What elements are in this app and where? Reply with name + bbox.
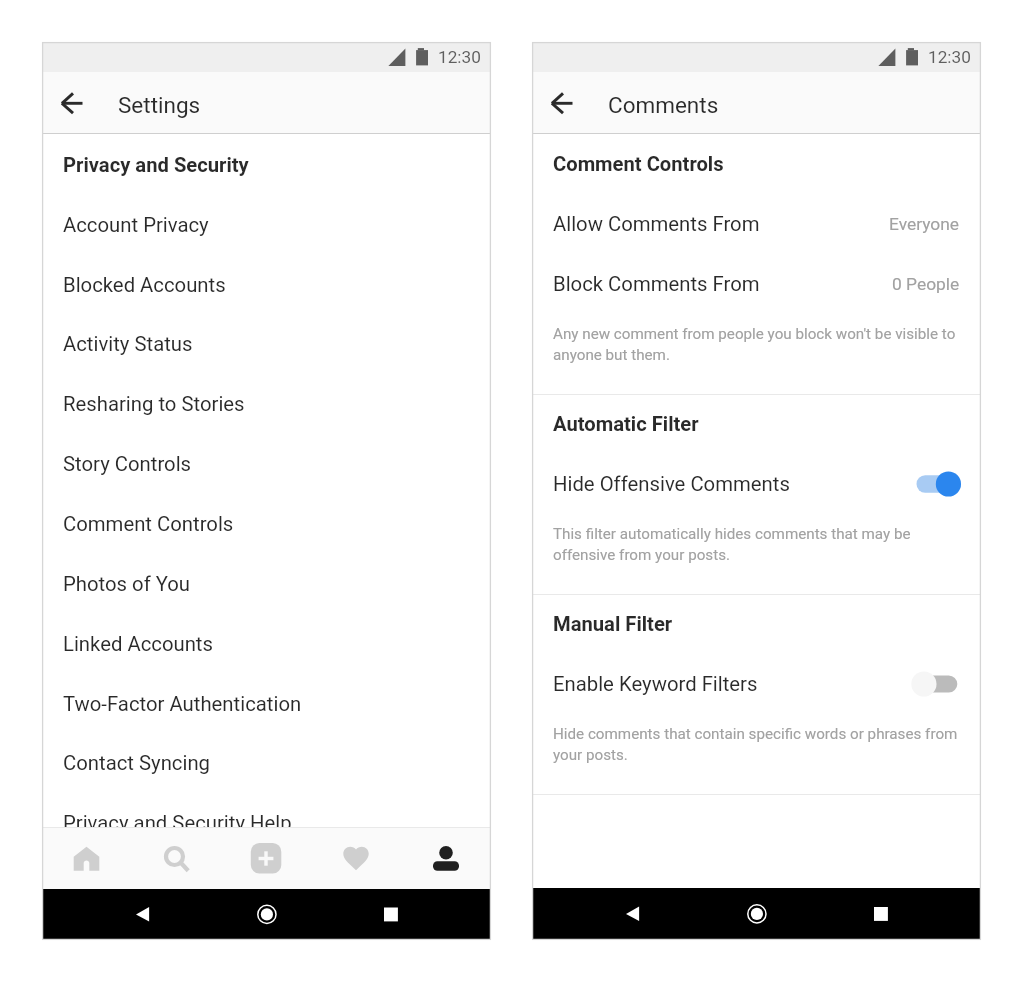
button[interactable]: Activity Status (42, 314, 491, 374)
staticText: Activity Status (63, 332, 193, 356)
staticText: Any new comment from people you block wo… (553, 323, 963, 365)
button[interactable]: Two-Factor Authentication (42, 674, 491, 734)
staticText: Enable Keyword Filters (553, 672, 758, 696)
staticText: Blocked Accounts (63, 273, 226, 297)
staticText: Comment Controls (553, 152, 724, 176)
button[interactable]: Allow Comments From (532, 196, 981, 252)
staticText: Photos of You (63, 572, 191, 596)
staticText: Account Privacy (63, 213, 209, 237)
staticText: This filter automatically hides comments… (553, 523, 963, 565)
button[interactable]: Privacy and Security Help (42, 793, 491, 853)
button[interactable]: New Post (221, 827, 311, 889)
staticText: Hide comments that contain specific word… (553, 723, 963, 765)
staticText: Linked Accounts (63, 632, 213, 656)
staticText: 12:30 (438, 47, 481, 67)
button[interactable]: Contact Syncing (42, 733, 491, 793)
button[interactable]: Account Privacy (42, 195, 491, 255)
staticText: 0 People (892, 274, 960, 294)
button[interactable]: Blocked Accounts (42, 255, 491, 315)
button[interactable]: Activity (311, 827, 401, 889)
button[interactable]: Photos of You (42, 554, 491, 614)
button[interactable]: Back (42, 72, 104, 133)
staticText: Hide Offensive Comments (553, 472, 790, 496)
button[interactable]: Back (114, 889, 184, 940)
staticText: Everyone (889, 214, 960, 234)
staticText: Allow Comments From (553, 212, 760, 236)
staticText: Contact Syncing (63, 751, 211, 775)
button[interactable]: Home (233, 889, 303, 940)
staticText: Resharing to Stories (63, 392, 245, 416)
staticText: Comment Controls (63, 512, 234, 536)
staticText: Manual Filter (553, 612, 673, 636)
button[interactable]: Enable Keyword Filters (532, 656, 981, 712)
button[interactable]: Search (131, 827, 221, 889)
button[interactable]: Recent apps (847, 888, 917, 940)
button[interactable]: Home (42, 827, 131, 889)
button[interactable]: Recent apps (357, 889, 427, 940)
staticText: Settings (118, 92, 201, 118)
staticText: Comments (608, 92, 719, 118)
staticText: Privacy and Security (63, 153, 249, 177)
staticText: Block Comments From (553, 272, 760, 296)
button[interactable]: Block Comments From (532, 256, 981, 312)
button[interactable]: Privacy and Security (42, 135, 491, 195)
staticText: 12:30 (928, 47, 971, 67)
button[interactable]: Hide Offensive Comments (532, 456, 981, 512)
staticText: Privacy and Security Help (63, 811, 292, 835)
button[interactable]: Linked Accounts (42, 614, 491, 674)
button[interactable]: Home (723, 888, 793, 940)
staticText: Story Controls (63, 452, 192, 476)
staticText: Two-Factor Authentication (63, 692, 302, 716)
button[interactable]: Back (604, 888, 674, 940)
button[interactable]: Profile (401, 827, 491, 889)
button[interactable]: Comment Controls (42, 494, 491, 554)
staticText: Automatic Filter (553, 412, 699, 436)
button[interactable]: Story Controls (42, 434, 491, 494)
button[interactable]: Resharing to Stories (42, 374, 491, 434)
button[interactable]: Back (532, 72, 594, 133)
